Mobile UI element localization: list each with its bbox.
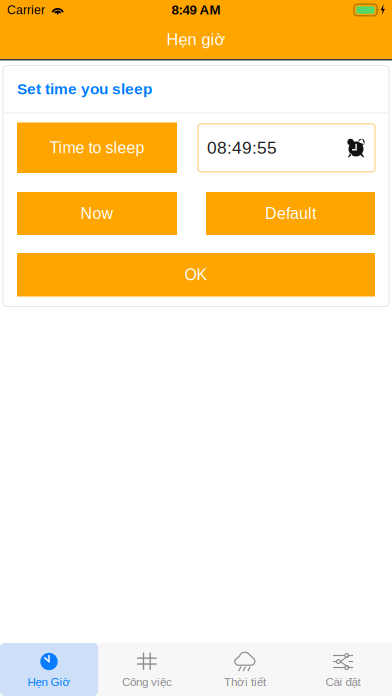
button[interactable]: Cài đặt: [294, 643, 392, 696]
staticText: Công việc: [122, 675, 172, 688]
staticText: OK: [184, 266, 207, 284]
staticText: 08:49:55: [207, 138, 277, 157]
button[interactable]: Thời tiết: [196, 643, 294, 696]
staticText: Thời tiết: [224, 675, 266, 688]
button[interactable]: Time to sleep: [17, 122, 177, 173]
button[interactable]: Công việc: [98, 643, 196, 696]
staticText: Default: [265, 205, 316, 222]
staticText: Carrier: [7, 3, 45, 17]
staticText: Set time you sleep: [17, 80, 152, 98]
staticText: Time to sleep: [49, 139, 144, 157]
staticText: 8:49 AM: [171, 3, 220, 17]
staticText: Cài đặt: [325, 675, 360, 688]
button[interactable]: Default: [206, 192, 375, 235]
staticText: Now: [80, 205, 113, 222]
button[interactable]: Now: [17, 192, 177, 235]
staticText: Hẹn Giờ: [27, 675, 70, 688]
button[interactable]: 08:49:55: [198, 124, 375, 172]
button[interactable]: OK: [17, 253, 375, 296]
staticText: Hẹn giờ: [166, 30, 225, 49]
button[interactable]: Hẹn Giờ: [0, 643, 98, 696]
